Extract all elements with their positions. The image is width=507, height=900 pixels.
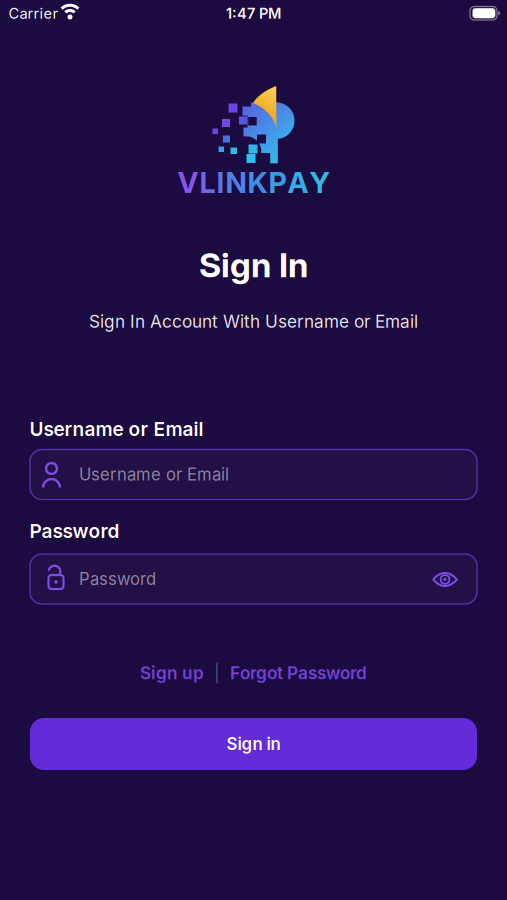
- staticText: A: [287, 165, 308, 200]
- staticText: N: [225, 165, 246, 200]
- staticText: Password: [79, 569, 156, 589]
- staticText: I: [216, 165, 224, 200]
- staticText: P: [268, 165, 286, 200]
- staticText: V: [177, 165, 198, 200]
- staticText: Password: [29, 519, 119, 543]
- staticText: Sign in: [226, 734, 280, 754]
- staticText: Carrier: [8, 5, 58, 22]
- staticText: Sign up: [140, 663, 204, 683]
- staticText: Y: [309, 165, 329, 200]
- staticText: |: [214, 663, 220, 683]
- staticText: Forgot Password: [230, 663, 367, 683]
- staticText: Sign In Account With Username or Email: [89, 311, 418, 332]
- staticText: 1:47 PM: [226, 5, 281, 22]
- staticText: Username or Email: [79, 464, 229, 484]
- staticText: L: [199, 165, 215, 200]
- staticText: K: [247, 165, 267, 200]
- button[interactable]: Forgot Password: [230, 663, 367, 683]
- button[interactable]: Sign up: [140, 663, 204, 683]
- button[interactable]: Sign in: [30, 718, 477, 770]
- button[interactable]: Show password: [0, 0, 507, 900]
- staticText: Username or Email: [29, 417, 203, 441]
- staticText: Sign In: [199, 244, 308, 285]
